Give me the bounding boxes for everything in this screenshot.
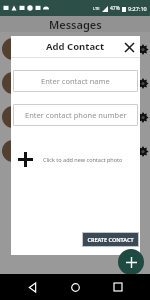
staticText: Click to add new contact photo — [43, 156, 123, 163]
staticText: Add Contact — [46, 40, 105, 53]
staticText: CREATE CONTACT — [87, 236, 134, 243]
staticText: Enter contact name — [41, 76, 110, 86]
button[interactable]: CREATE CONTACT — [82, 232, 139, 247]
button[interactable]: Enter contact name — [13, 70, 138, 92]
button[interactable]: New message — [118, 249, 144, 275]
button[interactable]: Close — [122, 40, 136, 54]
staticText: Messages — [49, 17, 102, 32]
button[interactable]: Back — [21, 276, 43, 298]
staticText: Alice — [30, 79, 44, 87]
button[interactable]: Click to add new contact photo — [11, 144, 140, 174]
staticText: 9:27:10 — [128, 5, 147, 12]
staticText: Enter contact phone number — [25, 110, 127, 120]
button[interactable]: Recents — [107, 276, 129, 298]
staticText: Carl — [30, 113, 42, 121]
button[interactable]: Home — [64, 276, 86, 298]
staticText: LTE — [93, 6, 100, 11]
button[interactable]: Enter contact phone number — [13, 104, 138, 126]
staticText: 47% — [110, 5, 120, 12]
